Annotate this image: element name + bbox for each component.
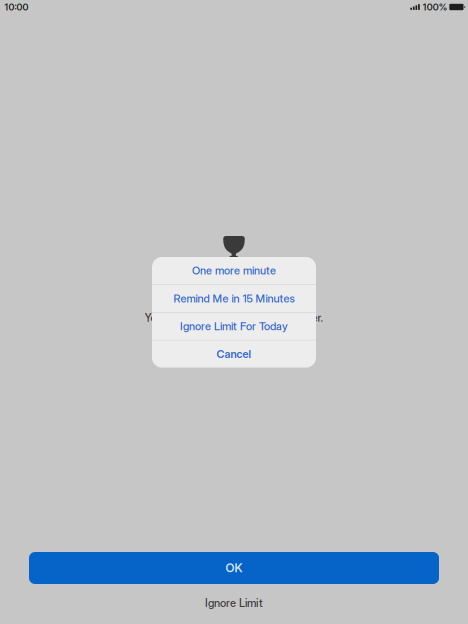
staticText: 100% xyxy=(423,1,447,13)
staticText: Remind Me in 15 Minutes xyxy=(173,292,294,305)
staticText: OK xyxy=(225,561,242,575)
staticText: Ignore Limit For Today xyxy=(180,320,288,333)
staticText: Cancel xyxy=(216,347,251,361)
staticText: You've reached your limit on Twitter. xyxy=(144,311,323,324)
button[interactable]: Ignore Limit xyxy=(0,584,468,615)
button[interactable]: One more minute xyxy=(152,257,316,284)
button[interactable]: Cancel xyxy=(152,340,316,368)
button[interactable]: Ignore Limit For Today xyxy=(152,313,316,340)
button[interactable]: Remind Me in 15 Minutes xyxy=(152,285,316,312)
staticText: 10:00 xyxy=(4,1,28,13)
staticText: Ignore Limit xyxy=(205,596,263,610)
button[interactable]: OK xyxy=(29,552,439,584)
staticText: One more minute xyxy=(192,264,276,277)
